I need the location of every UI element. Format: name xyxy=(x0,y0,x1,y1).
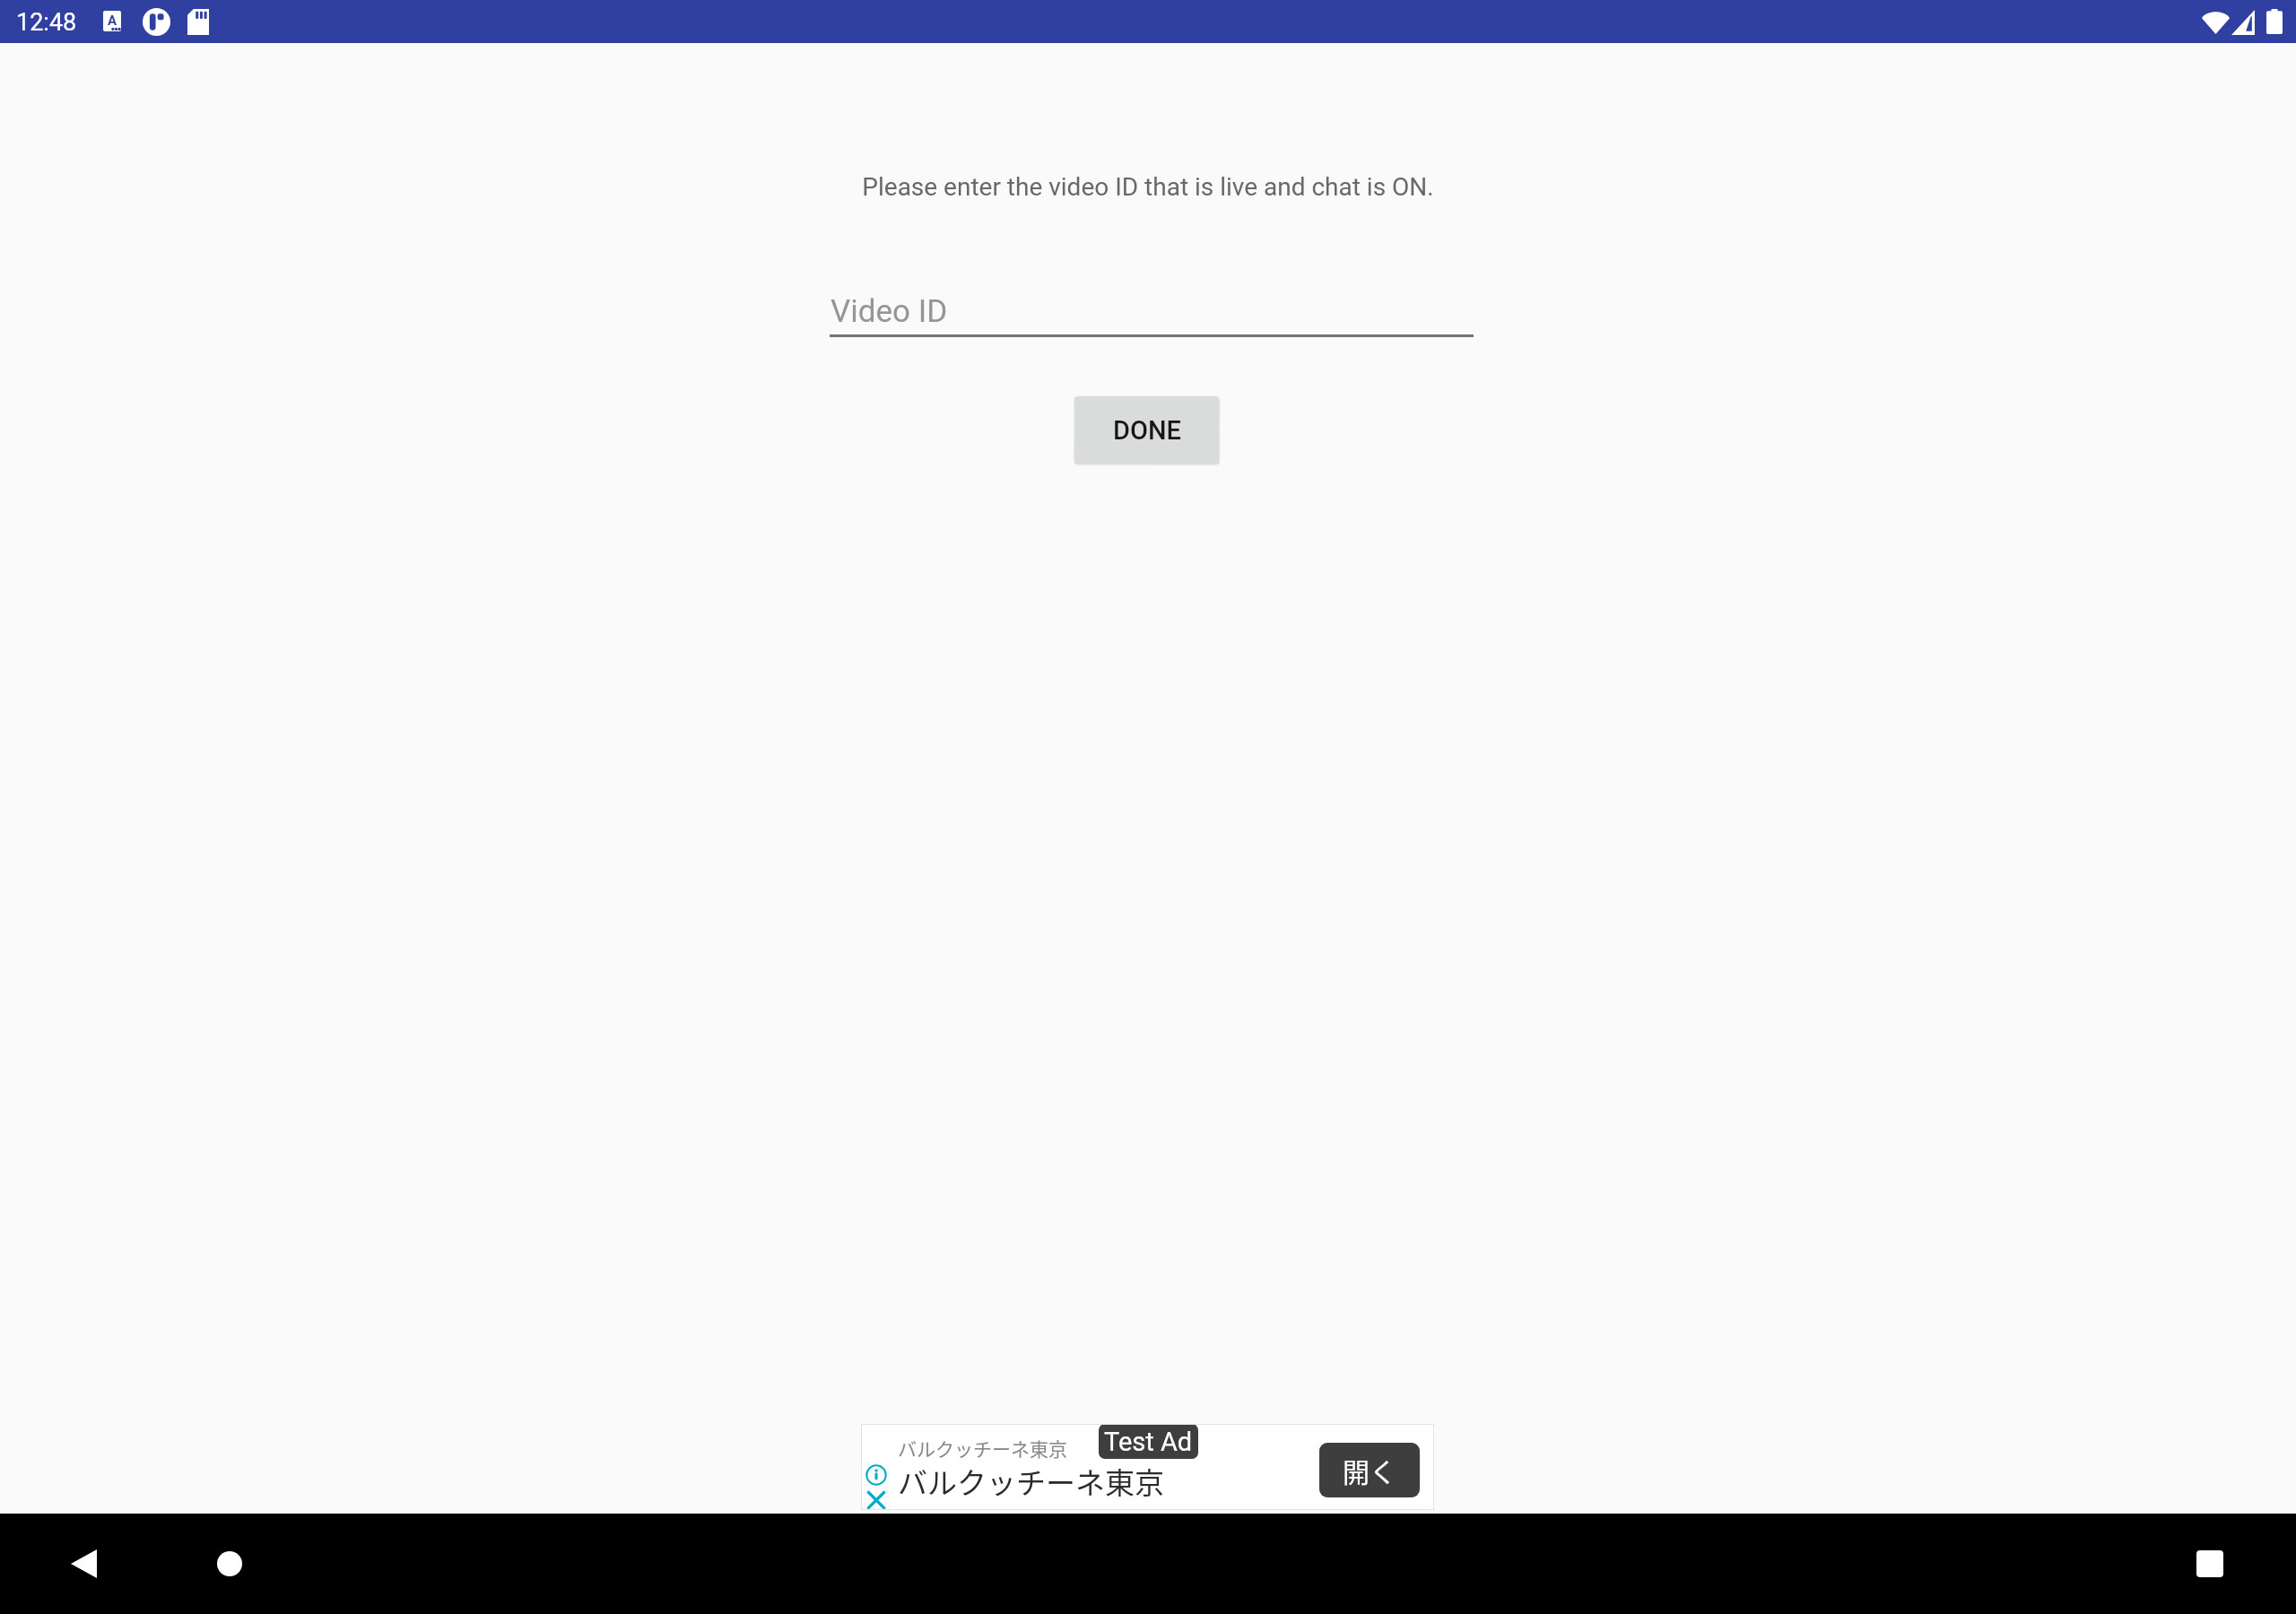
button[interactable]: Ad information xyxy=(865,1464,887,1486)
staticText: DONE xyxy=(1113,415,1181,446)
button[interactable]: 開く xyxy=(1319,1443,1420,1497)
button[interactable]: DONE xyxy=(1074,396,1219,464)
staticText: バルクッチーネ東京 xyxy=(898,1460,1164,1503)
staticText: 開く xyxy=(1343,1451,1396,1489)
button[interactable]: Close ad xyxy=(865,1489,887,1511)
button[interactable]: Home xyxy=(201,1535,258,1592)
staticText: Test Ad xyxy=(1104,1427,1193,1457)
staticText: バルクッチーネ東京 xyxy=(898,1435,1067,1462)
button[interactable]: Recent apps xyxy=(2181,1535,2239,1592)
button[interactable]: Video ID xyxy=(830,293,1474,338)
button[interactable]: Back xyxy=(55,1535,112,1592)
staticText: Video ID xyxy=(831,293,948,330)
staticText: A xyxy=(108,13,117,29)
staticText: Please enter the video ID that is live a… xyxy=(0,172,2296,202)
staticText: 12:48 xyxy=(16,8,77,37)
